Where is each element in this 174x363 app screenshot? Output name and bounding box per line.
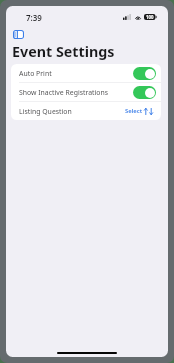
button[interactable]: Listing Question [11,102,161,120]
staticText: Select [125,107,143,115]
button[interactable]: Auto Print [11,64,161,82]
staticText: Auto Print [19,69,52,78]
staticText: Show Inactive Registrations [19,88,109,97]
button[interactable]: Toggle [133,67,156,80]
button[interactable]: Toggle [133,86,156,99]
staticText: 100 [146,14,154,20]
staticText: Listing Question [19,107,72,116]
button[interactable]: Toggle sidebar [13,30,24,39]
staticText: Event Settings [12,42,115,61]
button[interactable]: Show Inactive Registrations [11,83,161,101]
staticText: 7:39 [26,12,42,23]
